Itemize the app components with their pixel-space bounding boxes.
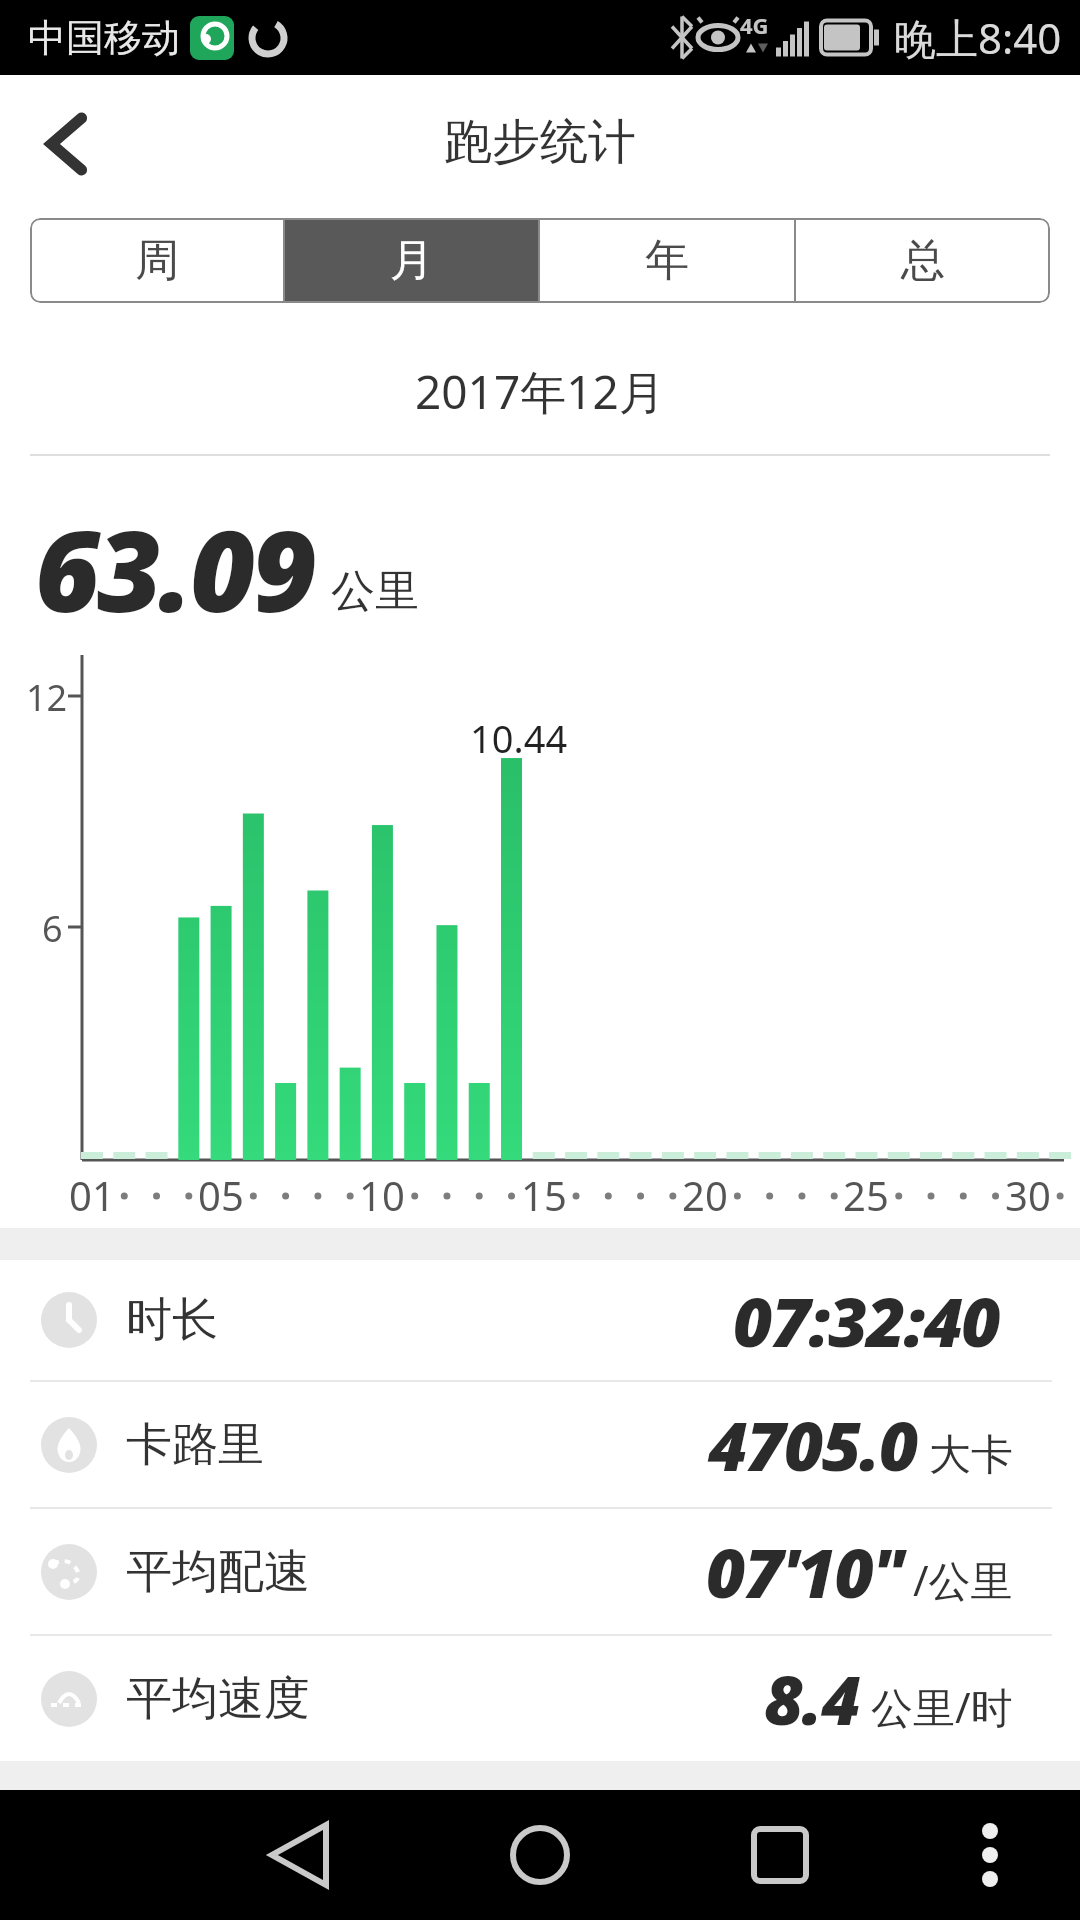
button[interactable] [720, 1790, 1080, 1920]
staticText: 时长 [126, 1291, 218, 1349]
staticText: 公里 [331, 564, 419, 619]
staticText: /公里 [902, 1551, 1013, 1608]
staticText: 25 [843, 1168, 889, 1222]
staticText: 8.4 [764, 1652, 860, 1745]
button[interactable]: 周 [30, 218, 283, 303]
staticText: 平均速度 [126, 1670, 310, 1728]
staticText: 6 [42, 904, 63, 953]
staticText: 晚上8:40 [894, 9, 1062, 66]
staticText: 30 [1005, 1168, 1051, 1222]
staticText: 平均配速 [126, 1543, 310, 1601]
staticText: 4G [740, 10, 769, 40]
staticText: 07'10" [706, 1525, 902, 1618]
button[interactable] [0, 1790, 360, 1920]
staticText: 2017年12月 [415, 360, 665, 423]
button[interactable]: 平均配速 [0, 1509, 1080, 1634]
staticText: 总 [901, 233, 945, 288]
button[interactable]: 时长 [0, 1260, 1080, 1380]
button[interactable] [40, 114, 92, 174]
staticText: 大卡 [918, 1424, 1013, 1481]
staticText: 跑步统计 [444, 112, 636, 172]
staticText: 10.44 [470, 712, 568, 764]
staticText: 07:32:40 [733, 1274, 1000, 1367]
button[interactable]: 年 [540, 218, 794, 303]
button[interactable] [360, 1790, 720, 1920]
staticText: 12 [26, 673, 68, 722]
staticText: 周 [135, 233, 179, 288]
staticText: 10 [359, 1168, 405, 1222]
staticText: 05 [198, 1168, 244, 1222]
staticText: 20 [682, 1168, 728, 1222]
staticText: 中国移动 [28, 14, 180, 62]
button[interactable]: 卡路里 [0, 1382, 1080, 1507]
staticText: 01 [69, 1168, 115, 1222]
staticText: 公里/时 [860, 1678, 1013, 1735]
button[interactable]: 总 [796, 218, 1050, 303]
staticText: 月 [390, 233, 434, 288]
button[interactable]: 月 [285, 218, 538, 303]
staticText: 年 [645, 233, 689, 288]
staticText: 4705.0 [708, 1398, 918, 1491]
button[interactable]: 平均速度 [0, 1636, 1080, 1761]
staticText: 卡路里 [126, 1416, 264, 1474]
staticText: 15 [521, 1168, 567, 1222]
staticText: 63.09 [35, 492, 315, 645]
